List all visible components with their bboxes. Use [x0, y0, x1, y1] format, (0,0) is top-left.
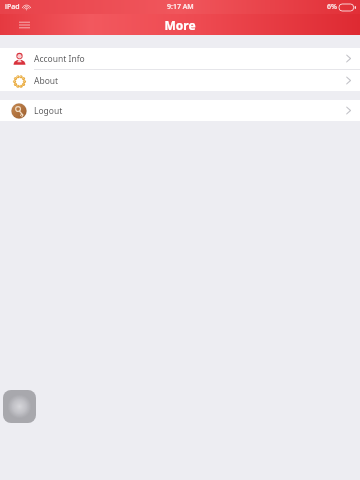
- staticText: Logout: [34, 105, 346, 117]
- button[interactable]: About: [0, 70, 360, 91]
- button[interactable]: Logout: [0, 100, 360, 121]
- staticText: About: [34, 75, 346, 87]
- staticText: 9:17 AM: [167, 2, 194, 12]
- staticText: Account Info: [34, 53, 346, 65]
- staticText: iPad: [5, 2, 20, 12]
- button[interactable]: AssistiveTouch: [3, 390, 36, 423]
- staticText: More: [164, 17, 196, 33]
- staticText: 6%: [327, 2, 337, 12]
- button[interactable]: Account Info: [0, 48, 360, 69]
- button[interactable]: Menu: [12, 16, 36, 34]
